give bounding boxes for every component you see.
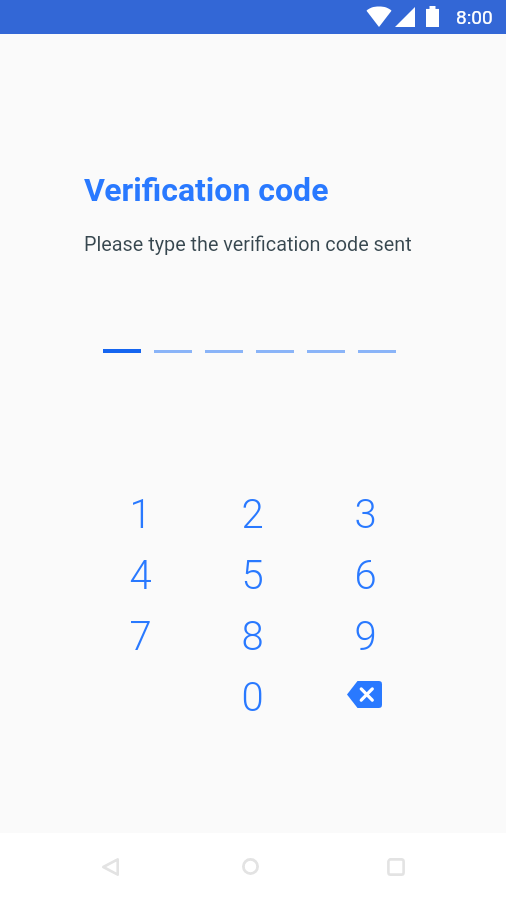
staticText: 2 (241, 491, 264, 538)
button[interactable]: Backspace (309, 667, 422, 728)
button[interactable]: 5 (196, 545, 309, 606)
button[interactable]: 9 (309, 606, 422, 667)
staticText: 6 (354, 552, 377, 599)
button[interactable]: 1 (84, 484, 196, 545)
staticText: 4 (129, 552, 152, 599)
staticText: 8 (241, 613, 264, 660)
staticText: 5 (241, 552, 264, 599)
button[interactable]: Back (74, 833, 146, 900)
button[interactable]: Home (214, 833, 286, 900)
other: Backspace (347, 681, 382, 708)
staticText: 1 (129, 491, 152, 538)
button[interactable]: 4 (84, 545, 196, 606)
staticText: Please type the verification code sent (84, 233, 412, 256)
staticText: 7 (129, 613, 152, 660)
button[interactable]: 2 (196, 484, 309, 545)
button[interactable]: 7 (84, 606, 196, 667)
button[interactable]: 6 (309, 545, 422, 606)
button[interactable]: 0 (196, 667, 309, 728)
staticText: Verification code (84, 171, 329, 209)
staticText: 3 (354, 491, 377, 538)
staticText: 8:00 (456, 6, 493, 28)
staticText: 9 (354, 613, 377, 660)
button[interactable]: 3 (309, 484, 422, 545)
button[interactable]: Recents (360, 833, 432, 900)
staticText: 0 (241, 674, 264, 721)
button[interactable]: 8 (196, 606, 309, 667)
